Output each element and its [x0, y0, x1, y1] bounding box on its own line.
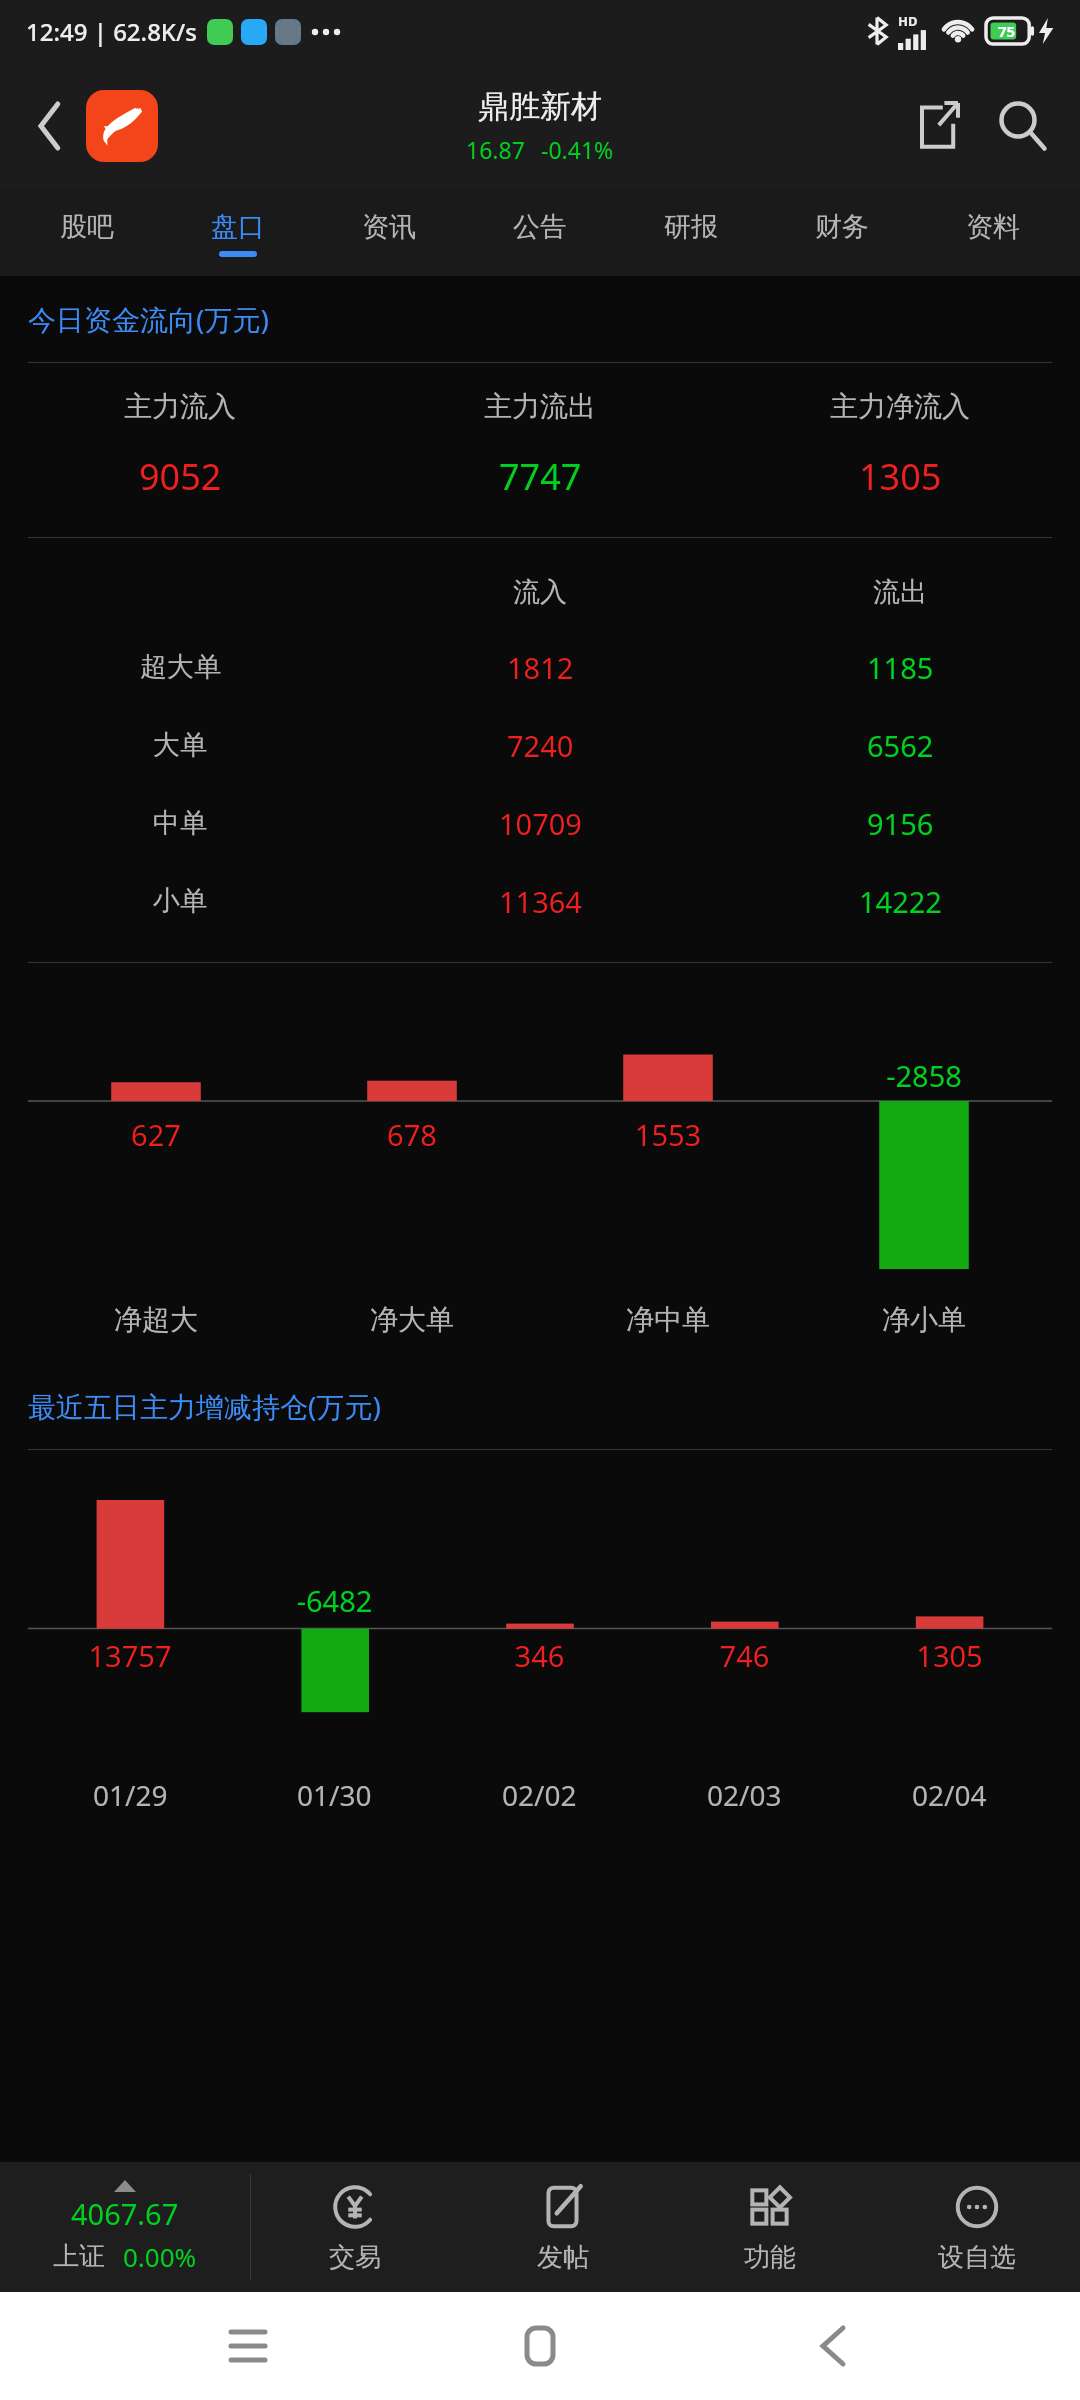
staticText: 盘口: [211, 210, 265, 244]
staticText: 02/04: [912, 1776, 987, 1814]
staticText: 678: [284, 1115, 540, 1154]
button[interactable]: 研报: [615, 190, 766, 276]
staticText: 1185: [867, 648, 934, 687]
button[interactable]: Share: [900, 88, 976, 164]
staticText: 02/03: [707, 1776, 782, 1814]
staticText: 流出: [873, 575, 927, 609]
staticText: 主力净流入: [830, 389, 970, 424]
staticText: 16.87: [466, 134, 525, 165]
button[interactable]: 资料: [917, 190, 1068, 276]
staticText: 10709: [499, 804, 582, 843]
staticText: 346: [437, 1636, 642, 1675]
staticText: HD: [898, 12, 918, 30]
button[interactable]: App icon: [86, 90, 158, 162]
staticText: 9052: [139, 452, 222, 501]
staticText: 1553: [540, 1115, 796, 1154]
staticText: 净超大: [114, 1302, 198, 1337]
staticText: 6562: [867, 726, 934, 765]
staticText: -0.41%: [541, 134, 614, 165]
staticText: 股吧: [60, 210, 114, 244]
staticText: 交易: [329, 2241, 381, 2274]
staticText: 01/30: [297, 1776, 372, 1814]
staticText: -2858: [796, 1056, 1052, 1095]
button[interactable]: 设自选: [873, 2162, 1080, 2292]
staticText: 0.00%: [123, 2239, 197, 2274]
staticText: 7747: [499, 452, 582, 501]
staticText: 净中单: [626, 1302, 710, 1337]
staticText: 功能: [744, 2241, 796, 2274]
staticText: 1305: [859, 452, 942, 501]
staticText: 主力流入: [124, 389, 236, 424]
staticText: 公告: [513, 210, 567, 244]
staticText: 今日资金流向(万元): [28, 300, 269, 338]
staticText: 大单: [153, 728, 207, 762]
staticText: -6482: [232, 1581, 437, 1620]
staticText: 小单: [153, 884, 207, 918]
staticText: 02/02: [502, 1776, 577, 1814]
staticText: 超大单: [140, 650, 221, 684]
staticText: 资讯: [362, 210, 416, 244]
staticText: 11364: [499, 882, 582, 921]
staticText: 75: [998, 21, 1016, 41]
staticText: 设自选: [938, 2241, 1016, 2274]
staticText: 746: [642, 1636, 847, 1675]
button[interactable]: 财务: [766, 190, 917, 276]
staticText: 14222: [859, 882, 942, 921]
staticText: 4067.67: [71, 2194, 179, 2233]
staticText: 上证: [53, 2240, 105, 2273]
staticText: 鼎胜新材: [478, 87, 602, 126]
staticText: 资料: [966, 210, 1020, 244]
button[interactable]: 功能: [666, 2162, 873, 2292]
staticText: 1305: [847, 1636, 1052, 1675]
staticText: 9156: [867, 804, 934, 843]
button[interactable]: Back: [788, 2301, 878, 2391]
button[interactable]: Home: [495, 2301, 585, 2391]
button[interactable]: 资讯: [313, 190, 464, 276]
staticText: 流入: [513, 575, 567, 609]
button[interactable]: Search: [984, 88, 1060, 164]
staticText: 7240: [507, 726, 574, 765]
staticText: 12:49 | 62.8K/s: [26, 15, 197, 48]
button[interactable]: 发帖: [459, 2162, 666, 2292]
button[interactable]: 股吧: [12, 190, 162, 276]
button[interactable]: 交易: [251, 2162, 459, 2292]
staticText: 01/29: [93, 1776, 168, 1814]
staticText: 财务: [815, 210, 869, 244]
staticText: 13757: [28, 1636, 232, 1675]
button[interactable]: Back: [18, 94, 82, 158]
button[interactable]: Recents: [203, 2301, 293, 2391]
staticText: 627: [28, 1115, 284, 1154]
staticText: 1812: [507, 648, 574, 687]
staticText: 中单: [153, 806, 207, 840]
staticText: 净小单: [882, 1302, 966, 1337]
button[interactable]: 盘口: [162, 190, 313, 276]
staticText: 研报: [664, 210, 718, 244]
staticText: 净大单: [370, 1302, 454, 1337]
staticText: 发帖: [537, 2241, 589, 2274]
button[interactable]: 公告: [464, 190, 615, 276]
staticText: 最近五日主力增减持仓(万元): [28, 1387, 381, 1425]
button[interactable]: 4067.67: [0, 2162, 250, 2292]
staticText: 主力流出: [484, 389, 596, 424]
